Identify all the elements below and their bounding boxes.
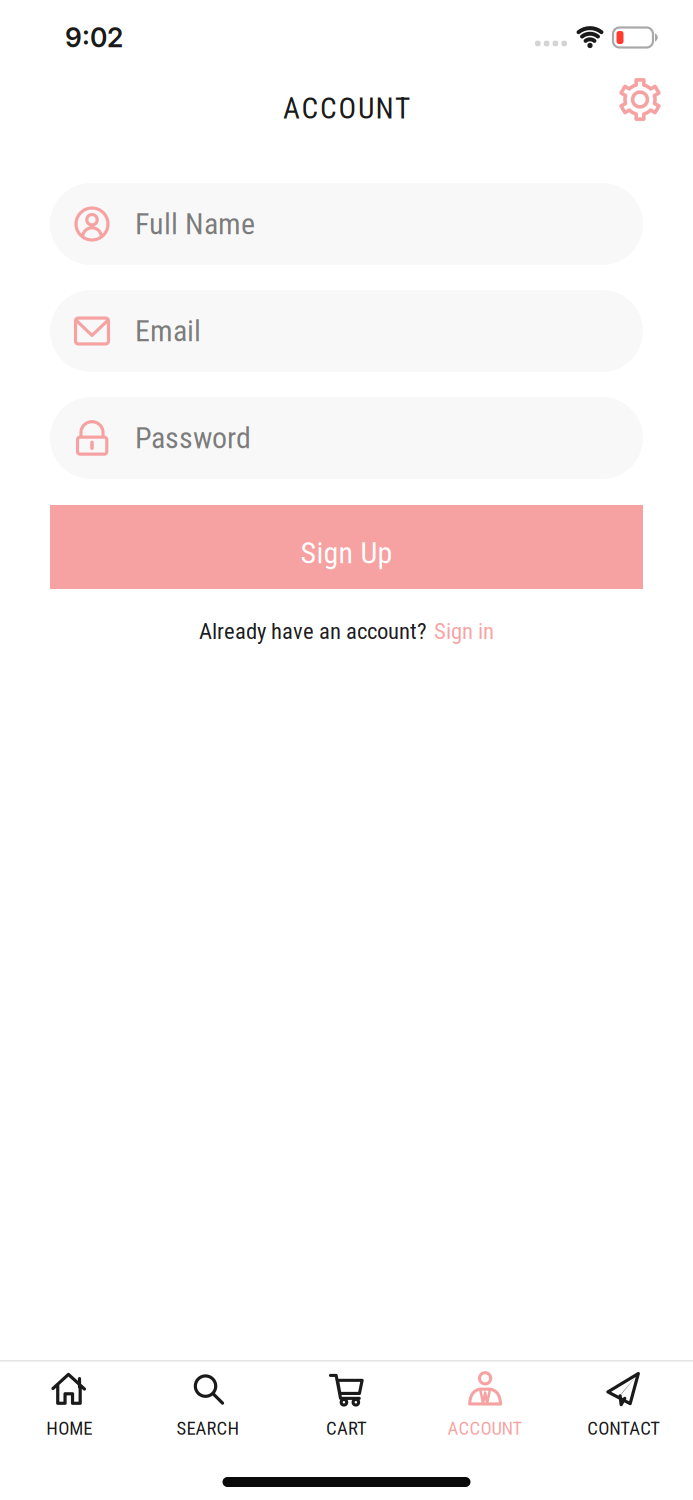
button[interactable]: Full Name	[50, 183, 643, 265]
button[interactable]: Sign in	[434, 618, 494, 645]
button[interactable]: CART	[277, 1371, 416, 1439]
staticText: ACCOUNT	[448, 1417, 523, 1439]
button[interactable]: Password	[50, 397, 643, 479]
staticText: Email	[135, 313, 201, 349]
button[interactable]: CONTACT	[554, 1371, 693, 1439]
staticText: HOME	[46, 1417, 92, 1439]
button[interactable]: ACCOUNT	[416, 1371, 554, 1439]
staticText: Full Name	[135, 206, 255, 242]
button[interactable]: Settings	[620, 79, 660, 119]
staticText: Already have an account?	[199, 618, 427, 645]
staticText: Password	[135, 420, 251, 456]
staticText: CART	[326, 1417, 367, 1439]
staticText: Sign in	[434, 618, 494, 645]
staticText: 9:02	[65, 21, 123, 54]
staticText: ACCOUNT	[283, 91, 410, 126]
staticText: CONTACT	[587, 1417, 660, 1439]
staticText: SEARCH	[176, 1417, 239, 1439]
button[interactable]: HOME	[0, 1371, 139, 1439]
staticText: Sign Up	[300, 535, 392, 571]
button[interactable]: Sign Up	[50, 505, 643, 589]
button[interactable]: SEARCH	[139, 1371, 277, 1439]
button[interactable]: Email	[50, 290, 643, 372]
